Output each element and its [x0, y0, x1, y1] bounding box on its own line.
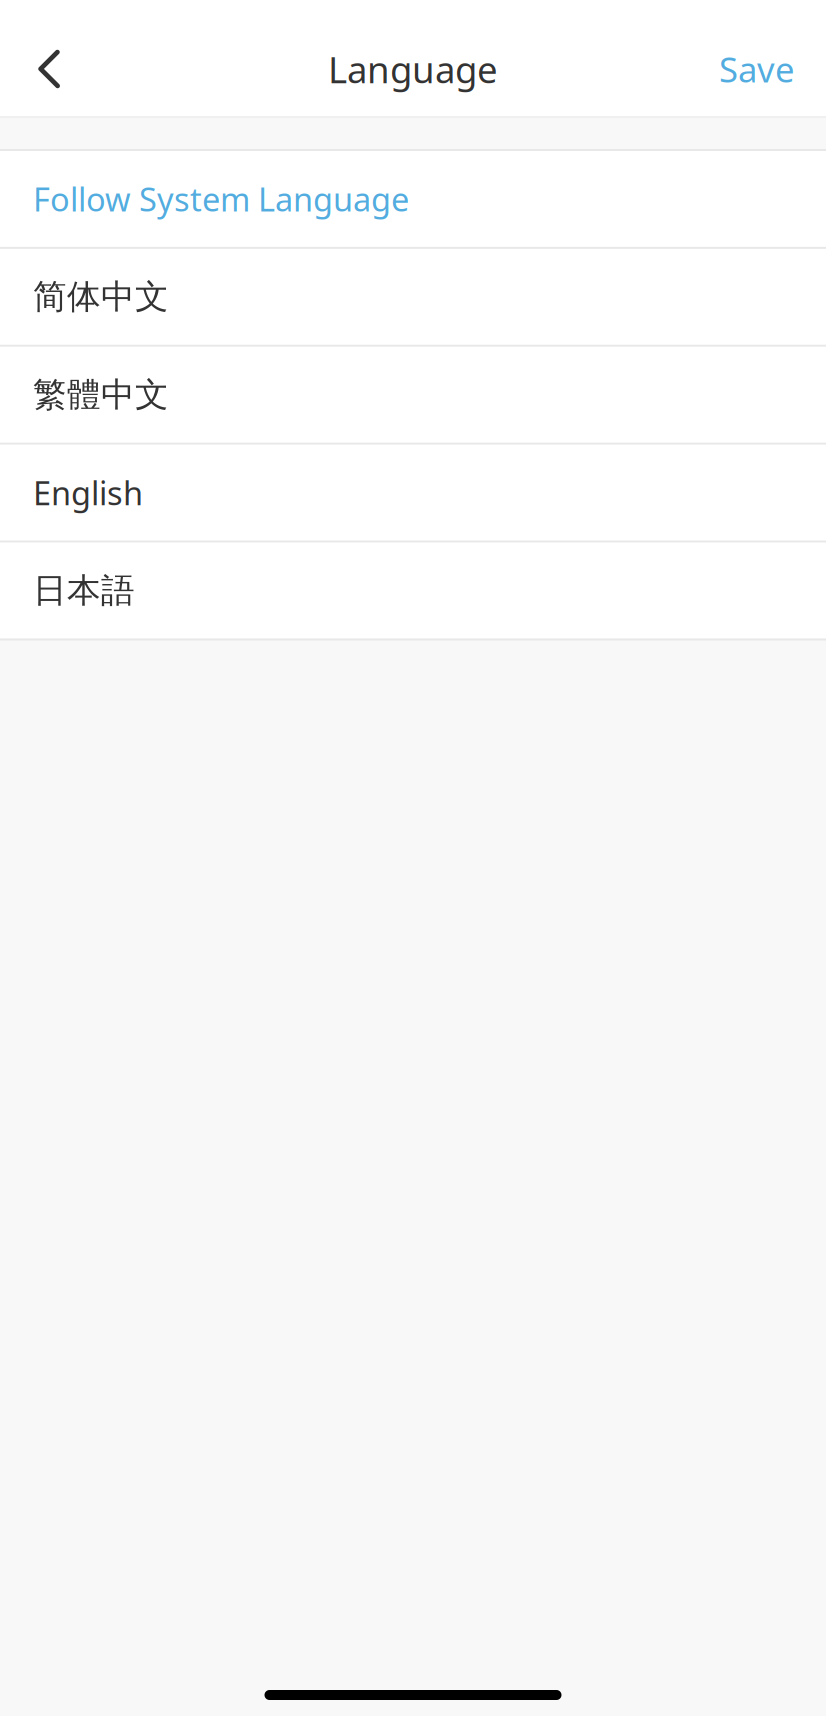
- button[interactable]: Save: [705, 31, 809, 107]
- staticText: 繁體中文: [33, 374, 169, 415]
- staticText: 简体中文: [33, 276, 169, 317]
- staticText: 日本語: [33, 570, 135, 611]
- staticText: English: [33, 471, 143, 514]
- staticText: Save: [719, 46, 795, 92]
- button[interactable]: 日本語: [0, 543, 826, 638]
- staticText: Follow System Language: [33, 177, 409, 220]
- button[interactable]: Follow System Language: [0, 151, 826, 247]
- button[interactable]: Back: [21, 31, 77, 107]
- button[interactable]: 简体中文: [0, 249, 826, 345]
- button[interactable]: 繁體中文: [0, 347, 826, 443]
- staticText: Language: [328, 45, 498, 93]
- button[interactable]: English: [0, 445, 826, 541]
